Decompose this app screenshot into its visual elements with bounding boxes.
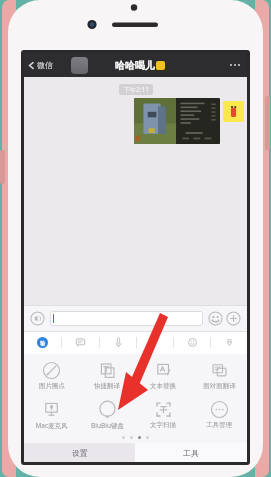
button[interactable]: 图片圈点 <box>24 359 79 392</box>
button[interactable]: 文本替换 <box>135 359 191 392</box>
button[interactable]: Sticker <box>174 331 210 354</box>
button[interactable]: Photo message <box>134 98 220 144</box>
button[interactable]: 文字扫描 <box>135 398 191 431</box>
button[interactable]: Text <box>62 331 99 354</box>
button[interactable]: Emoji <box>208 311 223 326</box>
staticText: 哈哈喝儿 <box>115 59 155 72</box>
button[interactable] <box>50 311 203 326</box>
button[interactable]: Keyboard tools <box>24 331 61 354</box>
staticText: 设置 <box>72 448 88 458</box>
staticText: 下午2:11 <box>123 85 149 94</box>
staticText: 图片圈点 <box>39 382 65 390</box>
staticText: 微信 <box>37 60 53 70</box>
staticText: 输 <box>40 340 45 346</box>
button[interactable]: 设置 <box>24 443 135 462</box>
staticText: 工具管理 <box>206 421 232 429</box>
button[interactable]: Translate <box>137 331 173 354</box>
button[interactable]: Voice input <box>30 311 45 326</box>
staticText: Mac麦克风 <box>35 421 68 430</box>
button[interactable]: BiuBiu键盘 <box>79 398 135 432</box>
staticText: 工具 <box>183 448 199 458</box>
button[interactable]: 微信 <box>24 56 57 74</box>
button[interactable]: Mac麦克风 <box>24 398 79 432</box>
staticText: BiuBiu键盘 <box>91 421 124 430</box>
staticText: 文本替换 <box>150 382 176 390</box>
button[interactable] <box>223 101 244 122</box>
button[interactable]: Collapse <box>211 331 247 354</box>
staticText: 面对面翻译 <box>203 382 236 390</box>
staticText: 文字扫描 <box>150 421 176 429</box>
button[interactable]: More <box>226 311 241 326</box>
staticText: 快捷翻译 <box>94 382 120 390</box>
button[interactable]: 工具管理 <box>191 398 247 431</box>
button[interactable]: 面对面翻译 <box>191 359 247 392</box>
button[interactable]: 快捷翻译 <box>79 359 135 392</box>
button[interactable]: Microphone <box>100 331 136 354</box>
button[interactable]: More options <box>223 58 247 72</box>
button[interactable]: 工具 <box>135 443 247 462</box>
